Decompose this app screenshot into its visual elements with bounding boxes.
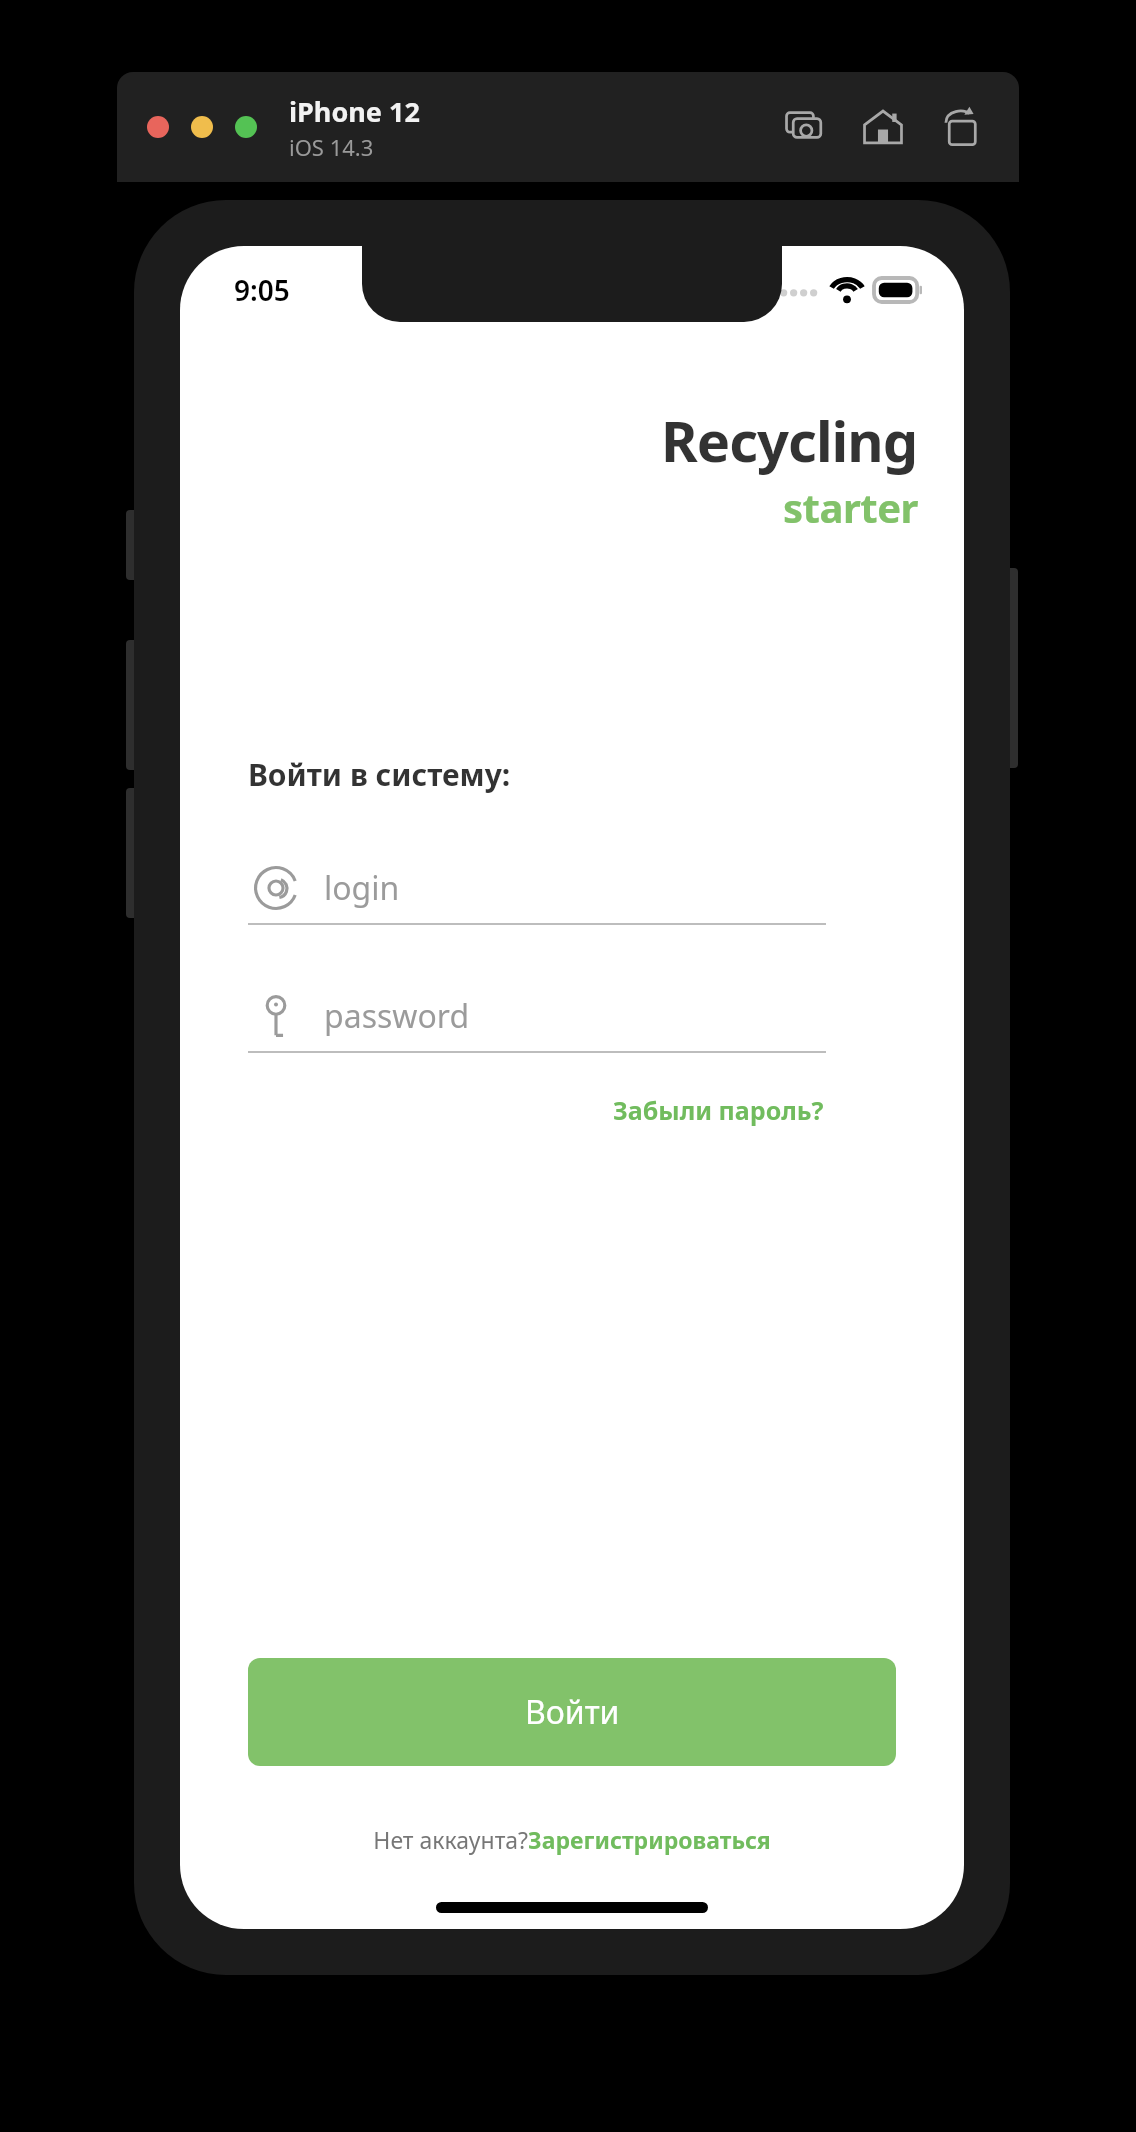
button[interactable]: [235, 116, 257, 138]
button[interactable]: login: [248, 853, 826, 925]
staticText: Нет аккаунта?Зарегистрироваться: [373, 1824, 771, 1855]
staticText: Войти в систему:: [248, 754, 511, 795]
button[interactable]: [191, 116, 213, 138]
button[interactable]: Нет аккаунта?Зарегистрироваться: [369, 1820, 775, 1859]
staticText: login: [324, 866, 400, 910]
button[interactable]: Rotate: [933, 99, 989, 155]
staticText: 9:05: [234, 271, 290, 309]
staticText: password: [324, 994, 470, 1038]
staticText: iOS 14.3: [289, 132, 374, 162]
button[interactable]: Забыли пароль?: [611, 1087, 826, 1133]
staticText: Recycling: [661, 402, 918, 478]
staticText: Войти: [525, 1690, 620, 1734]
button[interactable]: Screenshot: [777, 99, 833, 155]
staticText: iPhone 12: [289, 93, 420, 130]
staticText: Забыли пароль?: [613, 1093, 824, 1127]
button[interactable]: Home: [855, 99, 911, 155]
button[interactable]: Войти: [248, 1658, 896, 1766]
button[interactable]: password: [248, 981, 826, 1053]
button[interactable]: [147, 116, 169, 138]
staticText: starter: [783, 480, 918, 534]
